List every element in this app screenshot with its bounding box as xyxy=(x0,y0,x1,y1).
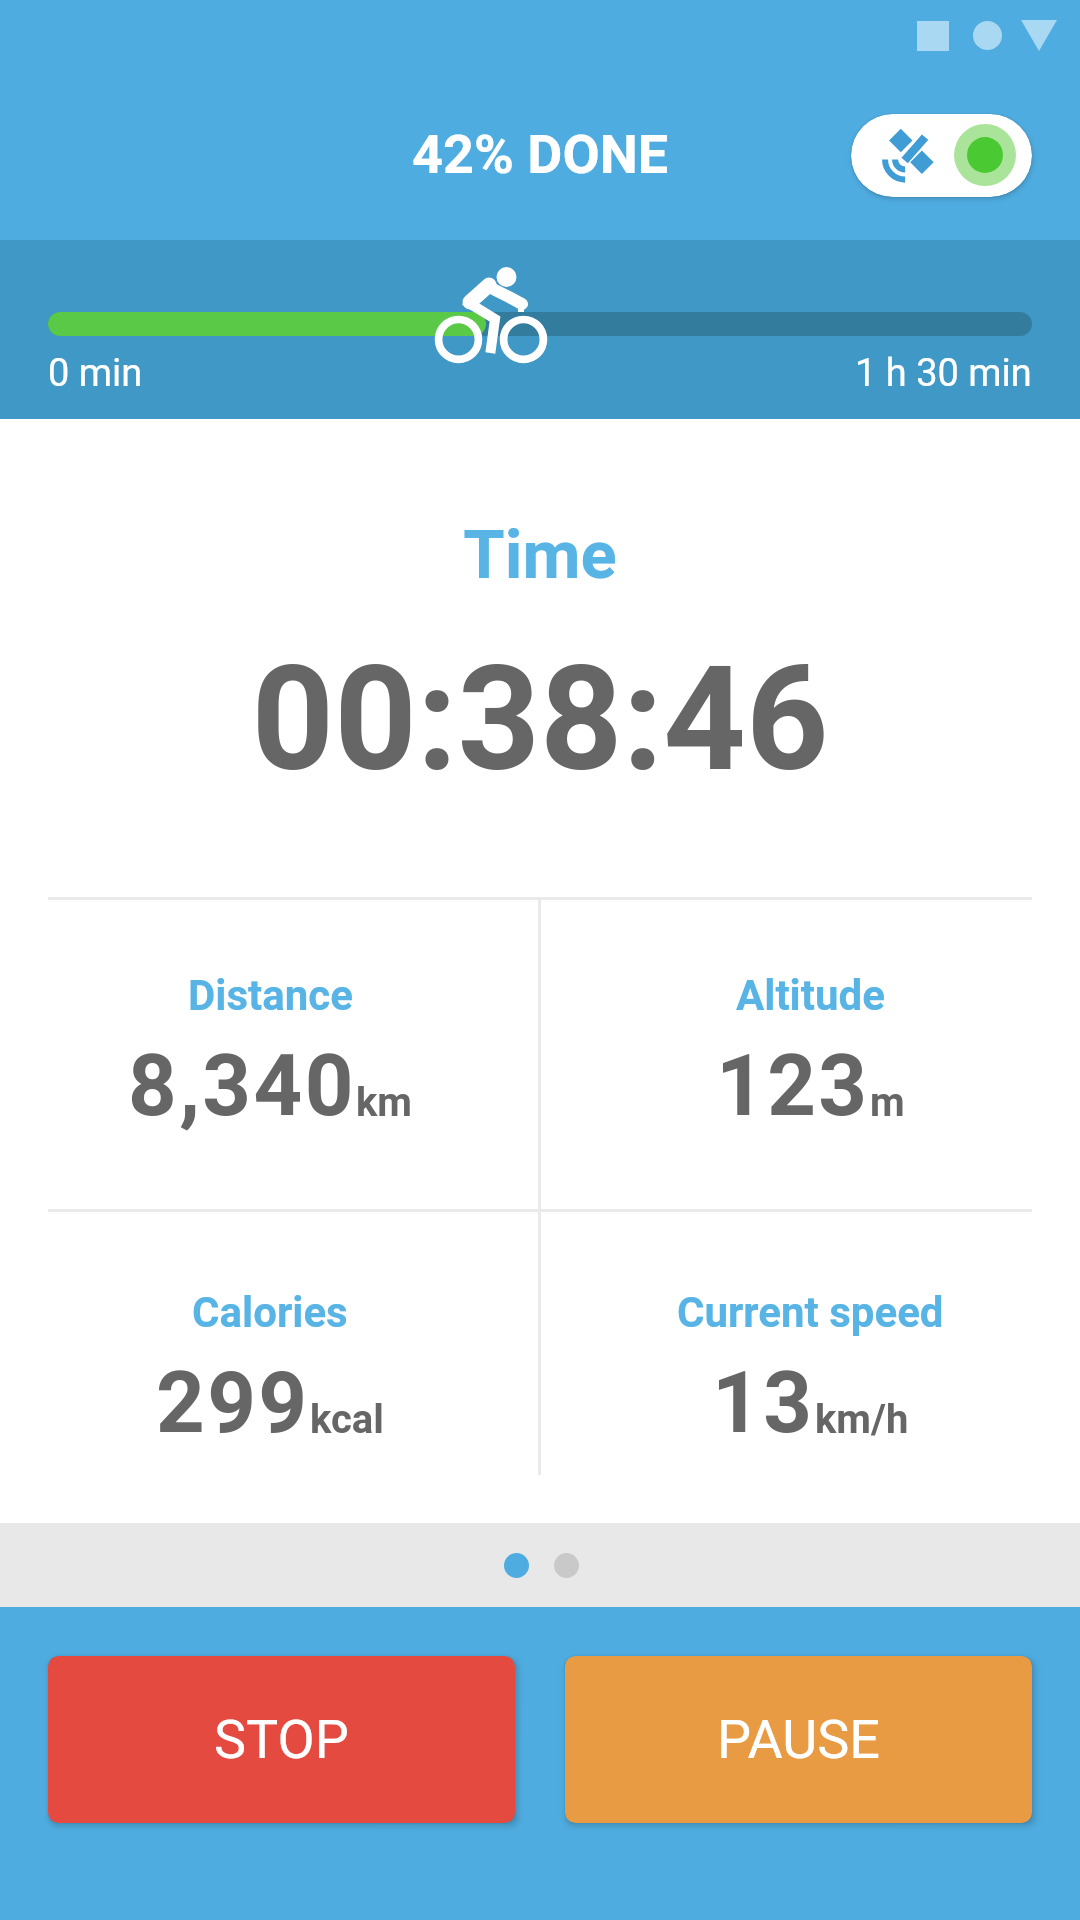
staticText: Current speed xyxy=(677,1288,944,1337)
button[interactable]: Calories xyxy=(0,1209,540,1532)
staticText: 13 xyxy=(712,1353,815,1453)
button[interactable]: Page 2 xyxy=(554,1553,579,1578)
staticText: 42% DONE xyxy=(412,123,669,186)
staticText: 299 xyxy=(156,1353,310,1453)
button[interactable]: Current speed xyxy=(540,1209,1080,1532)
button[interactable]: Distance xyxy=(0,897,540,1209)
button[interactable]: Page 1 xyxy=(504,1553,529,1578)
button[interactable]: STOP xyxy=(48,1656,515,1823)
staticText: 1 h 30 min xyxy=(855,351,1032,396)
staticText: m xyxy=(870,1079,905,1126)
staticText: 00:38:46 xyxy=(0,635,1080,804)
staticText: km/h xyxy=(815,1396,909,1443)
staticText: STOP xyxy=(214,1708,349,1771)
staticText: 123 xyxy=(716,1036,870,1136)
staticText: 0 min xyxy=(48,351,143,396)
staticText: km xyxy=(356,1079,412,1126)
staticText: kcal xyxy=(310,1396,384,1443)
staticText: PAUSE xyxy=(717,1708,880,1771)
staticText: Distance xyxy=(188,971,353,1020)
staticText: Altitude xyxy=(736,971,885,1020)
button[interactable]: PAUSE xyxy=(565,1656,1032,1823)
staticText: 8,340 xyxy=(128,1036,356,1136)
staticText: Time xyxy=(0,516,1080,595)
staticText: Calories xyxy=(192,1288,348,1337)
button[interactable]: GPS on xyxy=(851,114,1032,197)
button[interactable]: Altitude xyxy=(540,897,1080,1209)
